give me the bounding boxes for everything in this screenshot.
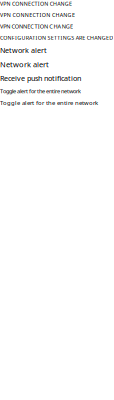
staticText: Toggle alert for the entire network [0,87,81,95]
staticText: VPN CONNECTION CHANGE [0,11,75,19]
staticText: VPN CONNECTION CHANGE [0,0,72,7]
staticText: Network alert [0,59,49,69]
staticText: Receive push notification [0,73,81,83]
staticText: VPN CONNECTION CHANGE [0,22,73,30]
staticText: CONFIGURATION SETTINGS ARE CHANGED [0,34,113,41]
staticText: Network alert [0,45,47,55]
staticText: Toggle alert for the entire network [0,99,98,107]
